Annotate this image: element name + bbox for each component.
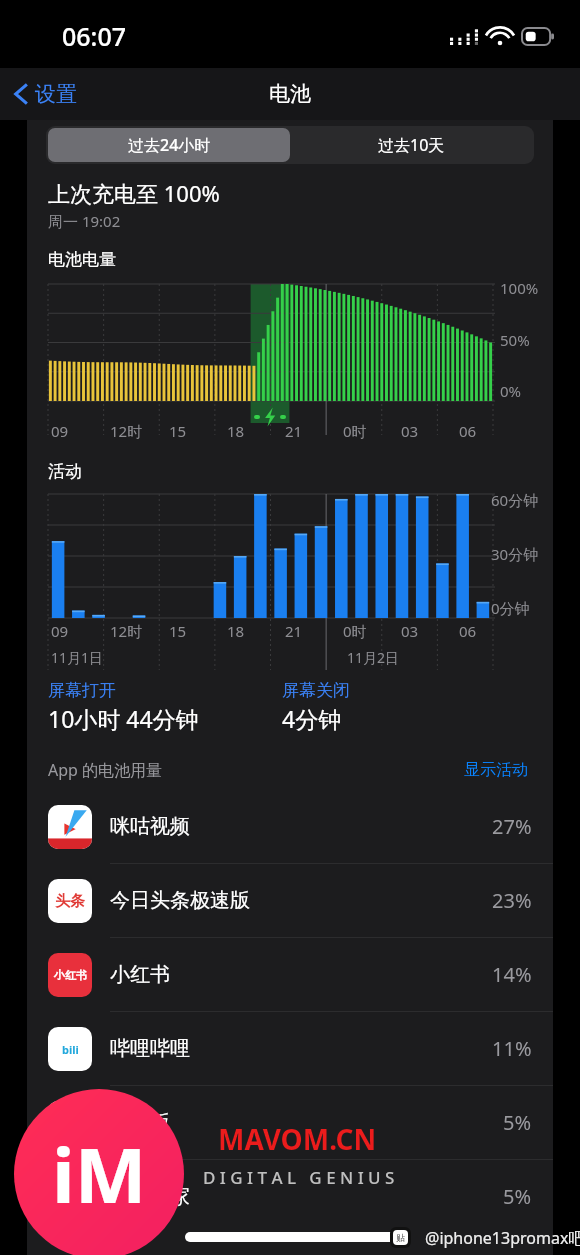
staticText: 哔哩哔哩 <box>110 1036 190 1061</box>
staticText: 周一 19:02 <box>48 211 121 231</box>
staticText: 11月2日 <box>347 648 400 667</box>
staticText: 18 <box>227 621 245 641</box>
button[interactable]: 速 <box>27 1086 553 1159</box>
staticText: 过去10天 <box>378 134 445 156</box>
staticText: 100% <box>500 278 539 298</box>
button[interactable]: 头条 <box>27 864 553 937</box>
staticText: 0时 <box>343 621 367 641</box>
staticText: 小红书 <box>110 962 170 987</box>
staticText: 14% <box>492 961 532 988</box>
staticText: 06 <box>459 621 477 641</box>
staticText: 0分钟 <box>491 598 530 618</box>
staticText: 03 <box>401 621 419 641</box>
button[interactable]: 过去24小时 <box>48 128 290 162</box>
staticText: MAVOM.CN <box>218 1120 377 1158</box>
button[interactable]: 汽车 <box>27 1160 553 1233</box>
button[interactable]: 显示活动 <box>460 756 532 784</box>
staticText: 09 <box>51 621 69 641</box>
staticText: 23% <box>492 887 532 914</box>
staticText: 咪咕视频 <box>110 814 190 839</box>
staticText: 11% <box>492 1035 532 1062</box>
staticText: 12时 <box>110 621 143 641</box>
button[interactable]: 过去10天 <box>290 128 532 162</box>
staticText: 0时 <box>343 421 367 441</box>
staticText: 上次充电至 100% <box>48 178 220 208</box>
staticText: 06:07 <box>62 19 127 53</box>
staticText: 15 <box>169 421 187 441</box>
staticText: 09 <box>51 421 69 441</box>
staticText: bili <box>62 1042 79 1057</box>
staticText: 汽车 <box>55 1188 85 1207</box>
staticText: 18 <box>227 421 245 441</box>
staticText: 27% <box>492 813 532 840</box>
staticText: 30分钟 <box>491 544 539 564</box>
staticText: App 的电池用量 <box>48 759 163 781</box>
staticText: 03 <box>401 421 419 441</box>
staticText: 电池 <box>269 81 311 107</box>
staticText: 5% <box>503 1183 532 1210</box>
staticText: D I G I T A L G E N I U S <box>203 1166 395 1189</box>
staticText: iM <box>52 1122 147 1226</box>
staticText: 头条 <box>55 892 85 911</box>
button[interactable]: ▶ <box>27 790 553 863</box>
staticText: 设置 <box>35 81 77 107</box>
staticText: 显示活动 <box>464 760 528 780</box>
staticText: 电池电量 <box>48 249 116 270</box>
staticText: 60分钟 <box>491 490 539 510</box>
staticText: 12时 <box>110 421 143 441</box>
button[interactable]: Back <box>0 75 89 113</box>
staticText: 小红书 <box>54 968 87 982</box>
staticText: 15 <box>169 621 187 641</box>
button[interactable]: bili <box>27 1012 553 1085</box>
staticText: 4分钟 <box>282 703 342 734</box>
staticText: 10小时 44分钟 <box>48 703 199 734</box>
staticText: 贴 <box>396 1232 405 1243</box>
staticText: ▶ <box>64 819 76 836</box>
staticText: 06 <box>459 421 477 441</box>
staticText: 极速版 <box>110 1110 170 1135</box>
staticText: 活动 <box>48 461 82 482</box>
other: Back <box>14 83 28 105</box>
staticText: 过去24小时 <box>128 134 211 156</box>
staticText: 11月1日 <box>51 648 104 667</box>
staticText: 50% <box>500 330 530 350</box>
button[interactable]: 小红书 <box>27 938 553 1011</box>
staticText: 今日头条极速版 <box>110 888 250 913</box>
staticText: 21 <box>285 421 303 441</box>
staticText: 屏幕关闭 <box>282 680 350 701</box>
staticText: @iphone13promax吧 <box>425 1227 580 1249</box>
staticText: 屏幕打开 <box>48 680 116 701</box>
staticText: 0% <box>500 381 522 401</box>
staticText: 汽车之家 <box>110 1184 190 1209</box>
staticText: 5% <box>503 1109 532 1136</box>
staticText: 21 <box>285 621 303 641</box>
